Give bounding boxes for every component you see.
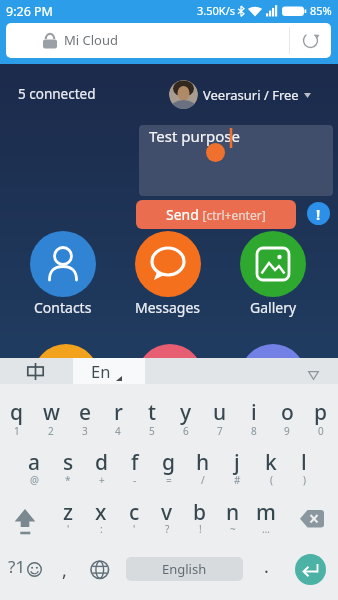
staticText: c bbox=[129, 498, 140, 527]
button[interactable]: * bbox=[52, 473, 84, 487]
staticText: n bbox=[226, 498, 240, 527]
button[interactable]: Send [ctrl+enter] bbox=[136, 200, 296, 229]
button[interactable] bbox=[300, 30, 321, 51]
button[interactable]: ' bbox=[118, 522, 150, 536]
staticText: 1 bbox=[14, 424, 20, 438]
button[interactable]: : bbox=[85, 522, 117, 536]
button[interactable]: f bbox=[119, 448, 151, 477]
button[interactable]: 8 bbox=[238, 424, 270, 438]
button[interactable]: ~ bbox=[217, 522, 249, 536]
button[interactable]: 0 bbox=[305, 424, 337, 438]
button[interactable]: Mi Cloud bbox=[6, 23, 331, 58]
button[interactable]: 2 bbox=[35, 424, 67, 438]
staticText: ! bbox=[199, 522, 202, 536]
button[interactable]: p bbox=[305, 398, 337, 427]
button[interactable]: 7 bbox=[204, 424, 236, 438]
button[interactable]: En bbox=[73, 358, 145, 384]
button[interactable]: / bbox=[187, 473, 219, 487]
button[interactable]: n bbox=[217, 498, 249, 527]
staticText: r bbox=[114, 398, 123, 427]
button[interactable]: ) bbox=[288, 473, 320, 487]
button[interactable]: # bbox=[221, 473, 253, 487]
button[interactable]: c bbox=[118, 498, 150, 527]
button[interactable] bbox=[14, 509, 36, 535]
button[interactable]: ' bbox=[52, 522, 84, 536]
staticText: English bbox=[162, 560, 207, 578]
button[interactable] bbox=[30, 231, 96, 297]
button[interactable]: l bbox=[288, 448, 320, 477]
button[interactable] bbox=[0, 358, 73, 384]
button[interactable]: ?1 bbox=[8, 555, 26, 578]
staticText: 85% bbox=[310, 3, 332, 18]
button[interactable]: d bbox=[86, 448, 118, 477]
staticText: 5 bbox=[149, 424, 155, 438]
button[interactable]: ? bbox=[151, 522, 183, 536]
staticText: z bbox=[63, 498, 74, 527]
button[interactable]: + bbox=[86, 473, 118, 487]
staticText: 4 bbox=[115, 424, 121, 438]
button[interactable]: s bbox=[52, 448, 84, 477]
button[interactable]: o bbox=[271, 398, 303, 427]
button[interactable]: t bbox=[136, 398, 168, 427]
button[interactable]: ( bbox=[255, 473, 287, 487]
button[interactable]: b bbox=[184, 498, 216, 527]
staticText: j bbox=[234, 448, 240, 477]
button[interactable]: j bbox=[221, 448, 253, 477]
staticText: 9:26 PM bbox=[6, 3, 53, 20]
staticText: m bbox=[256, 498, 276, 527]
button[interactable]: v bbox=[151, 498, 183, 527]
button[interactable]: 1 bbox=[1, 424, 33, 438]
button[interactable]: w bbox=[35, 398, 67, 427]
button[interactable]: 6 bbox=[170, 424, 202, 438]
button[interactable]: @ bbox=[18, 473, 50, 487]
button[interactable]: = bbox=[153, 473, 185, 487]
staticText: Test purpose bbox=[149, 126, 240, 146]
staticText: 3 bbox=[82, 424, 88, 438]
button[interactable]: 4 bbox=[102, 424, 134, 438]
button[interactable]: , bbox=[62, 558, 67, 583]
button[interactable]: Test purpose bbox=[139, 125, 333, 196]
button[interactable]: ! bbox=[184, 522, 216, 536]
staticText: w bbox=[43, 398, 60, 427]
button[interactable]: 3 bbox=[69, 424, 101, 438]
button[interactable] bbox=[300, 510, 324, 528]
staticText: x bbox=[95, 498, 107, 527]
button[interactable]: u bbox=[204, 398, 236, 427]
button[interactable]: English bbox=[126, 557, 243, 581]
button[interactable]: - bbox=[119, 473, 151, 487]
button[interactable]: ! bbox=[307, 202, 330, 225]
button[interactable]: m bbox=[250, 498, 282, 527]
button[interactable]: y bbox=[170, 398, 202, 427]
staticText: y bbox=[180, 398, 192, 427]
button[interactable] bbox=[240, 231, 306, 297]
button[interactable]: a bbox=[18, 448, 50, 477]
staticText: l bbox=[301, 448, 307, 477]
staticText: Mi Cloud bbox=[64, 31, 118, 49]
staticText: Veerasuri / Free bbox=[203, 86, 299, 104]
staticText: 0 bbox=[318, 424, 324, 438]
button[interactable]: g bbox=[153, 448, 185, 477]
staticText: Send [ctrl+enter] bbox=[166, 205, 266, 224]
staticText: … bbox=[262, 522, 270, 536]
button[interactable]: q bbox=[1, 398, 33, 427]
button[interactable] bbox=[308, 371, 319, 380]
staticText: h bbox=[196, 448, 210, 477]
button[interactable]: h bbox=[187, 448, 219, 477]
button[interactable] bbox=[90, 560, 110, 580]
button[interactable]: … bbox=[250, 522, 282, 536]
button[interactable]: Veerasuri / Free bbox=[203, 86, 311, 104]
staticText: Messages bbox=[135, 298, 201, 317]
button[interactable]: 5 bbox=[136, 424, 168, 438]
staticText: @ bbox=[30, 473, 39, 487]
button[interactable]: i bbox=[238, 398, 270, 427]
button[interactable]: r bbox=[102, 398, 134, 427]
button[interactable]: x bbox=[85, 498, 117, 527]
button[interactable]: e bbox=[69, 398, 101, 427]
button[interactable]: k bbox=[255, 448, 287, 477]
button[interactable]: z bbox=[52, 498, 84, 527]
staticText: * bbox=[65, 473, 71, 487]
button[interactable]: 9 bbox=[271, 424, 303, 438]
button[interactable] bbox=[135, 231, 201, 297]
button[interactable] bbox=[295, 554, 326, 585]
button[interactable]: . bbox=[264, 554, 269, 579]
